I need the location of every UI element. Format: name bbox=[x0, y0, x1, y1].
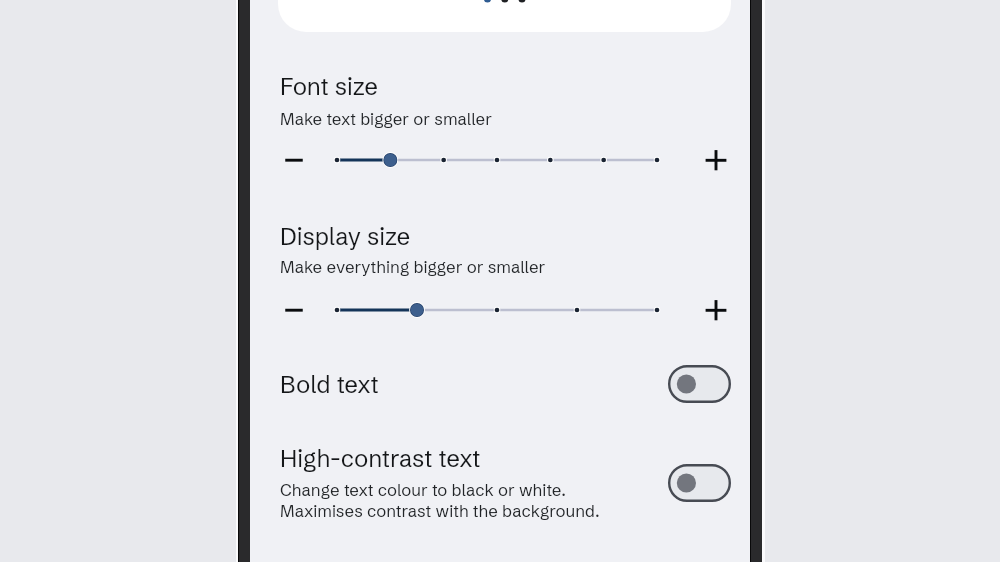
staticText: Change text colour to black or white. bbox=[280, 480, 566, 501]
staticText: Make text bigger or smaller bbox=[280, 109, 492, 130]
staticText: High-contrast text bbox=[280, 444, 481, 474]
staticText: Make everything bigger or smaller bbox=[280, 257, 546, 278]
button[interactable]: display size slider bbox=[325, 290, 669, 330]
button[interactable]: Toggle, off bbox=[668, 464, 731, 502]
staticText: Bold text bbox=[280, 370, 379, 400]
button[interactable]: Increase font size bbox=[694, 138, 738, 182]
button[interactable]: Decrease display size bbox=[272, 288, 316, 332]
button[interactable]: High-contrast text bbox=[250, 432, 750, 530]
staticText: Maximises contrast with the background. bbox=[280, 501, 600, 522]
button[interactable]: Increase display size bbox=[694, 288, 738, 332]
button[interactable]: Toggle, off bbox=[668, 365, 731, 403]
staticText: Display size bbox=[280, 222, 411, 252]
button[interactable]: font size slider bbox=[325, 140, 669, 180]
button[interactable]: Decrease font size bbox=[272, 138, 316, 182]
staticText: Font size bbox=[280, 72, 379, 102]
button[interactable]: Bold text bbox=[250, 352, 750, 416]
